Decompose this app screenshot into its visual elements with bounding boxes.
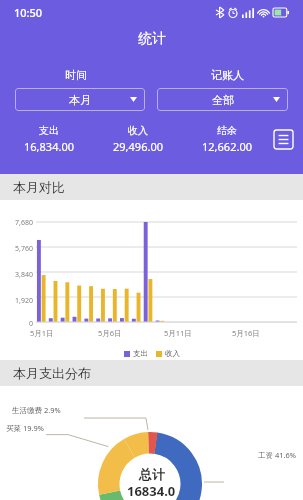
staticText: 时间 <box>65 68 87 82</box>
staticText: 5月11日 <box>164 328 192 338</box>
button[interactable]: 全部 <box>157 88 288 111</box>
staticText: 5月6日 <box>98 328 122 338</box>
staticText: 全部 <box>212 93 234 107</box>
staticText: 5,760 <box>15 244 33 254</box>
staticText: 本月 <box>69 93 91 107</box>
staticText: 1,920 <box>15 296 33 306</box>
staticText: 16,834.00 <box>24 139 74 154</box>
staticText: 总计 <box>139 466 165 482</box>
staticText: 收入 <box>165 349 180 358</box>
staticText: 买菜 19.9% <box>6 423 45 433</box>
staticText: 支出 <box>39 124 59 137</box>
staticText: 12,662.00 <box>202 139 252 154</box>
staticText: 结余 <box>217 124 237 137</box>
staticText: 0 <box>28 319 33 329</box>
staticText: 本月支出分布 <box>13 365 91 381</box>
staticText: 记账人 <box>211 68 244 82</box>
staticText: 收入 <box>128 124 148 137</box>
staticText: 10:50 <box>14 5 43 20</box>
staticText: 统计 <box>138 30 166 48</box>
staticText: 5月16日 <box>232 328 260 338</box>
staticText: 生活缴费 2.9% <box>12 405 61 415</box>
button[interactable]: More options <box>271 127 295 151</box>
staticText: 5月1日 <box>30 328 54 338</box>
staticText: 支出 <box>133 349 148 358</box>
staticText: 3,840 <box>15 270 33 280</box>
staticText: 16834.0 <box>127 482 176 500</box>
staticText: 29,496.00 <box>113 139 163 154</box>
staticText: 7,680 <box>15 218 33 228</box>
staticText: 工资 41.6% <box>258 450 297 460</box>
staticText: 本月对比 <box>13 179 65 195</box>
button[interactable]: 本月 <box>15 88 145 111</box>
